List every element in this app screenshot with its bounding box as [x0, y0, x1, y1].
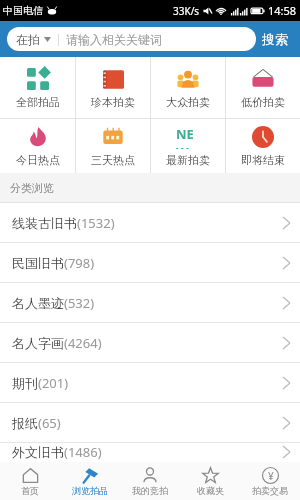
staticText: 请输入相关关键词 — [66, 32, 162, 47]
staticText: 线装古旧书 — [12, 215, 77, 231]
button[interactable]: 珍本拍卖 — [76, 57, 150, 118]
button[interactable]: 即将结束 — [226, 119, 300, 173]
button[interactable]: 线装古旧书 — [0, 203, 300, 242]
staticText: (65) — [38, 414, 61, 432]
staticText: 最新拍卖 — [166, 153, 210, 167]
button[interactable]: 全部拍品 — [0, 57, 75, 118]
staticText: 即将结束 — [241, 153, 285, 167]
staticText: 拍卖交易 — [252, 485, 288, 496]
staticText: 珍本拍卖 — [91, 95, 135, 109]
staticText: (798) — [64, 254, 95, 272]
staticText: 大众拍卖 — [166, 95, 210, 109]
staticText: (1532) — [77, 214, 115, 232]
staticText: 我的竞拍 — [132, 485, 168, 496]
button[interactable]: 名人字画 — [0, 323, 300, 362]
staticText: 在拍 — [16, 32, 40, 47]
staticText: 全部拍品 — [16, 95, 60, 109]
staticText: 14:58 — [268, 3, 297, 18]
staticText: (201) — [38, 374, 69, 392]
button[interactable]: 我的竞拍 — [120, 462, 180, 500]
button[interactable]: 期刊 — [0, 363, 300, 402]
staticText: 收藏夹 — [197, 485, 224, 496]
staticText: NEW — [176, 125, 200, 149]
staticText: 外文旧书 — [12, 444, 64, 460]
staticText: 中国电信 — [3, 4, 43, 17]
staticText: 搜索 — [262, 31, 288, 47]
button[interactable]: ¥ — [240, 462, 300, 500]
staticText: ¥ — [268, 469, 274, 483]
staticText: 名人墨迹 — [12, 295, 64, 311]
staticText: 浏览拍品 — [72, 485, 108, 496]
staticText: 首页 — [21, 485, 39, 496]
button[interactable]: 首页 — [0, 462, 60, 500]
button[interactable]: 搜索 — [256, 27, 294, 51]
staticText: 民国旧书 — [12, 255, 64, 271]
staticText: 名人字画 — [12, 335, 64, 351]
button[interactable]: 收藏夹 — [180, 462, 240, 500]
button[interactable]: 三天热点 — [76, 119, 150, 173]
staticText: 期刊 — [12, 375, 38, 391]
staticText: 三天热点 — [91, 153, 135, 167]
button[interactable]: 浏览拍品 — [60, 462, 120, 500]
staticText: (532) — [64, 294, 95, 312]
button[interactable]: 民国旧书 — [0, 243, 300, 282]
staticText: (4264) — [64, 334, 102, 352]
button[interactable]: 外文旧书 — [0, 443, 300, 461]
button[interactable]: 今日热点 — [0, 119, 75, 173]
button[interactable]: 报纸 — [0, 403, 300, 442]
button[interactable]: 大众拍卖 — [151, 57, 225, 118]
staticText: 报纸 — [12, 415, 38, 431]
button[interactable]: NEW — [151, 119, 225, 173]
button[interactable]: 在拍 — [7, 27, 256, 51]
staticText: 低价拍卖 — [241, 95, 285, 109]
staticText: 今日热点 — [16, 153, 60, 167]
button[interactable]: 低价拍卖 — [226, 57, 300, 118]
button[interactable]: 名人墨迹 — [0, 283, 300, 322]
staticText: 分类浏览 — [10, 181, 54, 195]
staticText: (1486) — [64, 443, 102, 461]
staticText: 33K/s — [173, 4, 200, 18]
